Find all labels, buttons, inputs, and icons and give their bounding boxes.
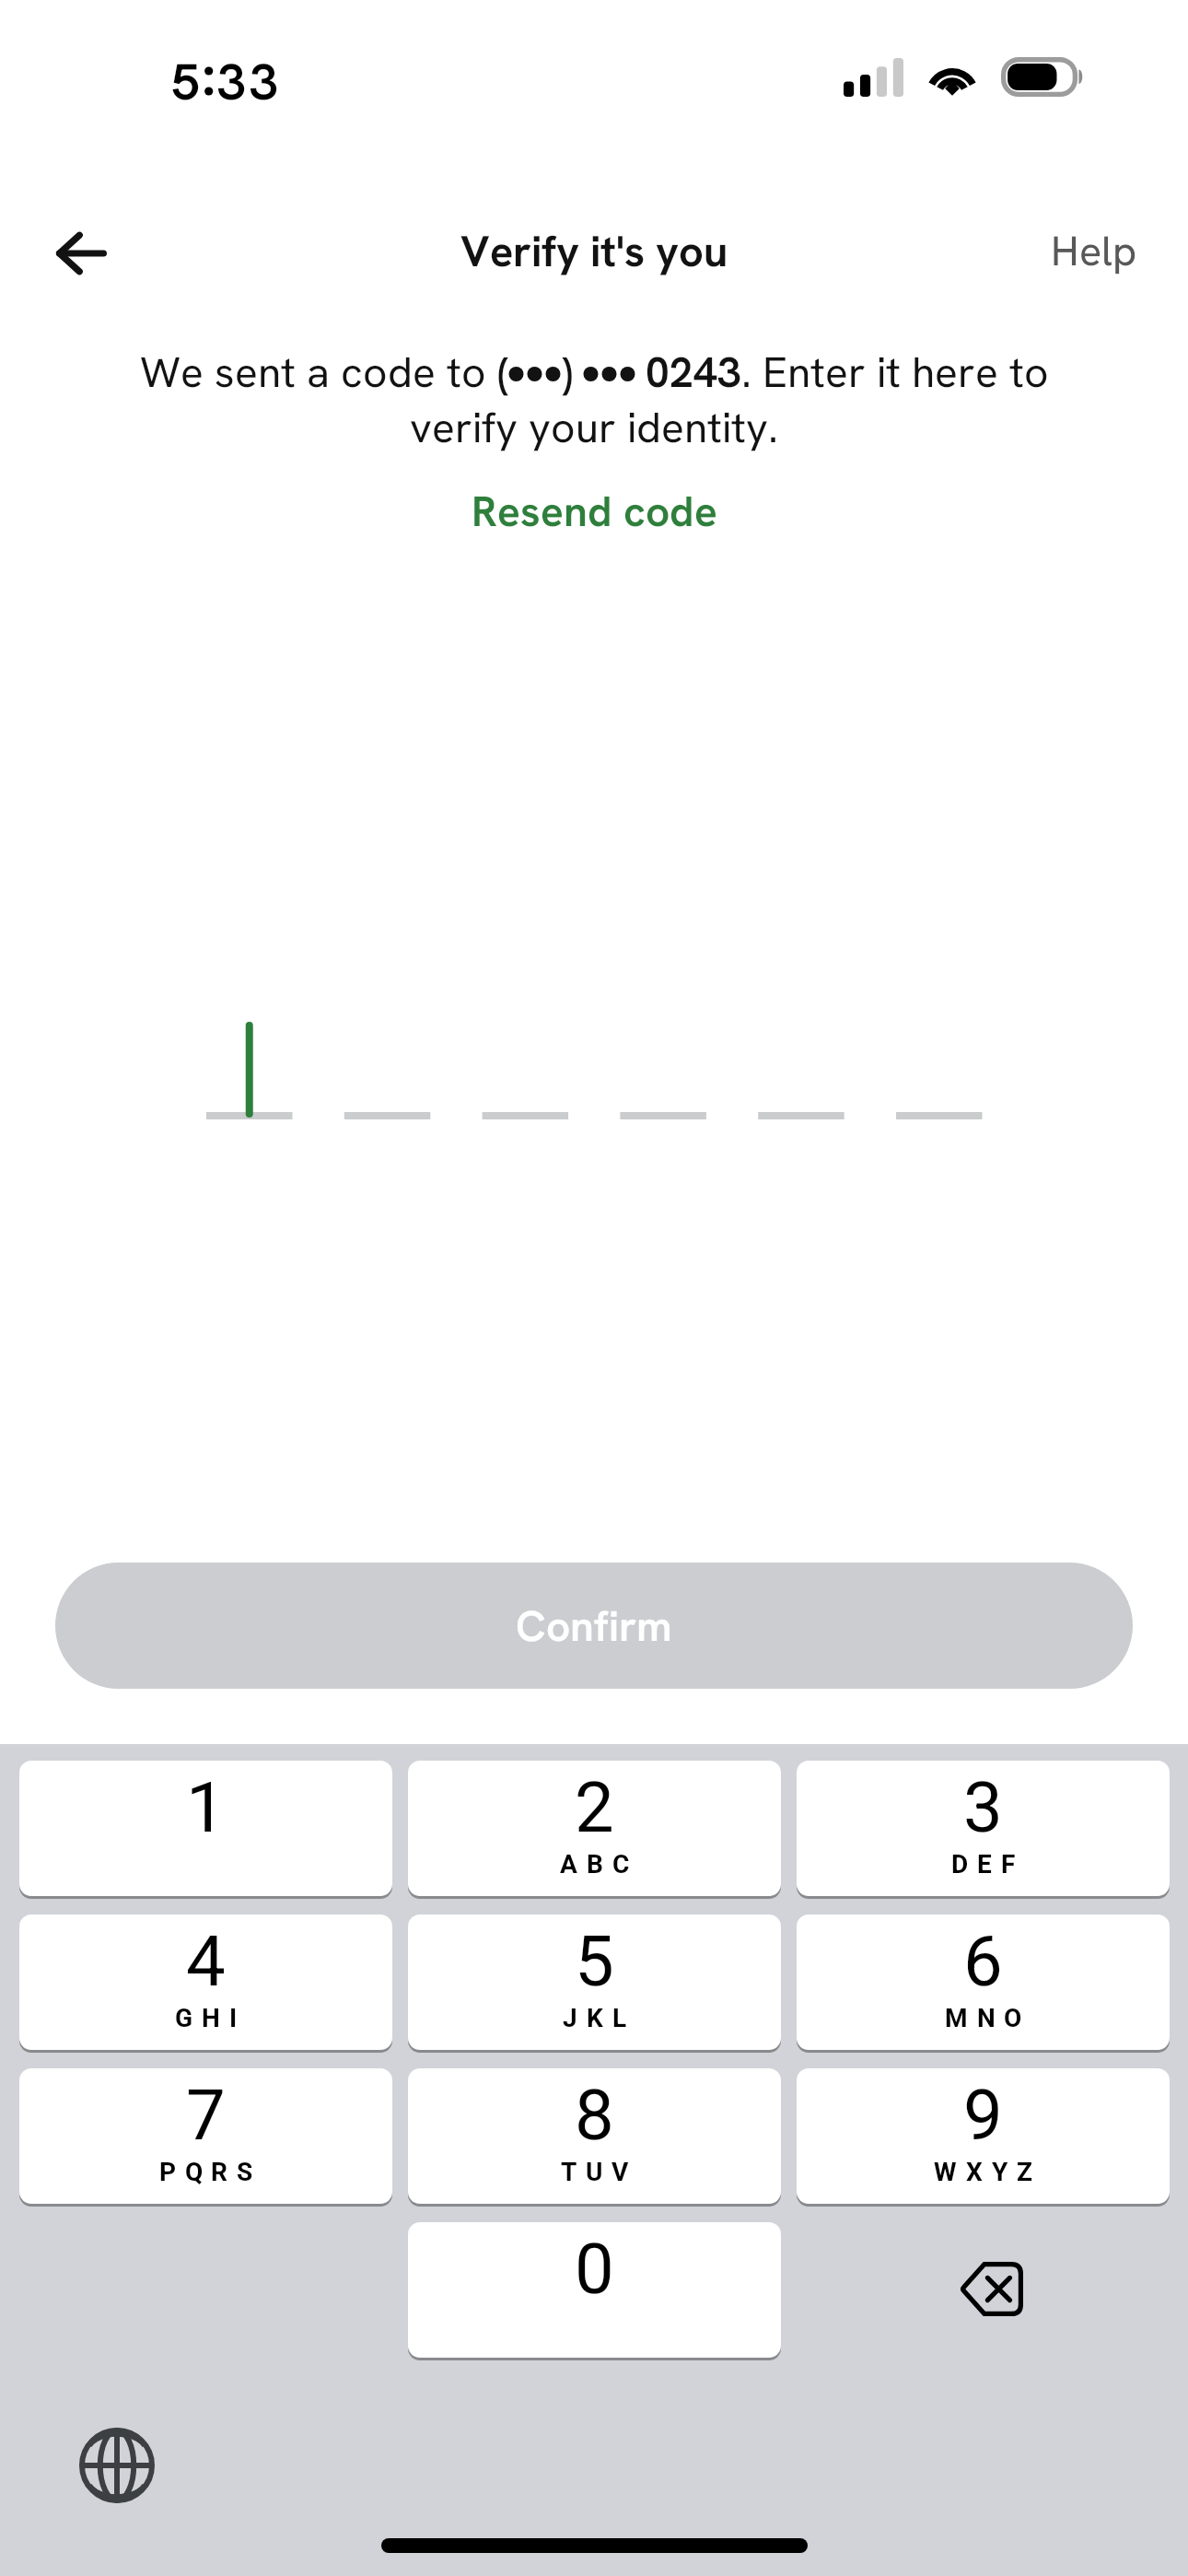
button[interactable]: Verification code xyxy=(184,1004,1004,1133)
button[interactable]: 6 xyxy=(797,1914,1170,2050)
button[interactable]: Confirm xyxy=(55,1563,1133,1689)
button[interactable]: 5 xyxy=(408,1914,781,2050)
button[interactable]: 0 xyxy=(408,2222,781,2358)
button[interactable]: 4 xyxy=(19,1914,392,2050)
button[interactable]: 9 xyxy=(797,2068,1170,2204)
button[interactable]: 1 xyxy=(19,1761,392,1896)
button[interactable]: Back xyxy=(37,210,125,297)
button[interactable]: Backspace xyxy=(798,2222,1171,2358)
button[interactable]: 3 xyxy=(797,1761,1170,1896)
button[interactable]: 7 xyxy=(19,2068,392,2204)
button[interactable]: 8 xyxy=(408,2068,781,2204)
button[interactable]: Next keyboard xyxy=(76,2425,157,2506)
button[interactable]: Resend code xyxy=(460,486,728,551)
button[interactable]: 2 xyxy=(408,1761,781,1896)
button[interactable]: Help xyxy=(1048,217,1159,289)
